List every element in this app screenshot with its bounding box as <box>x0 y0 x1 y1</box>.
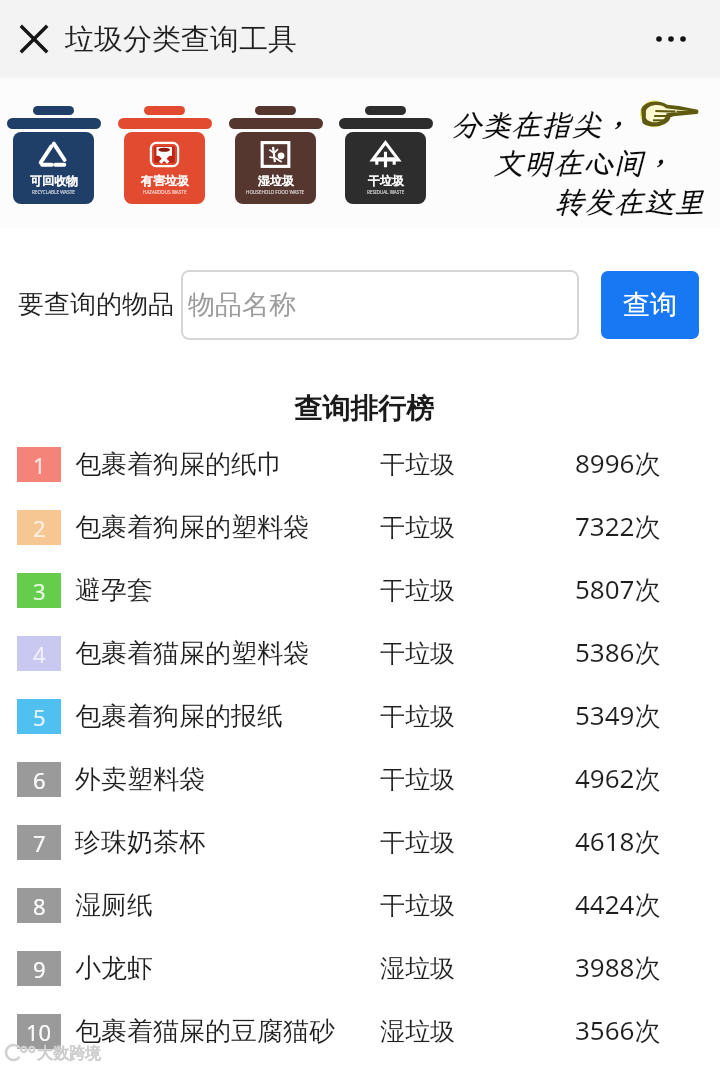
button[interactable]: 4 <box>0 622 720 685</box>
staticText: 包裹着猫屎的豆腐猫砂 <box>75 1015 335 1048</box>
staticText: 包裹着猫屎的塑料袋 <box>75 637 309 670</box>
button[interactable]: 5 <box>0 685 720 748</box>
staticText: 5807次 <box>575 571 661 607</box>
button[interactable]: 1 <box>0 433 720 496</box>
staticText: 干垃圾 <box>380 827 455 858</box>
button[interactable]: More options <box>645 13 697 65</box>
staticText: 外卖塑料袋 <box>75 763 205 796</box>
button[interactable]: 查询 <box>601 271 699 339</box>
staticText: HOUSEHOLD FOOD WASTE <box>246 189 305 195</box>
staticText: 包裹着狗屎的纸巾 <box>75 448 283 481</box>
staticText: 3988次 <box>575 949 661 985</box>
staticText: 6 <box>33 765 46 795</box>
staticText: 垃圾分类查询工具 <box>65 21 297 58</box>
staticText: 包裹着狗屎的塑料袋 <box>75 511 309 544</box>
staticText: 干垃圾 <box>380 701 455 732</box>
button[interactable]: 7 <box>0 811 720 874</box>
button[interactable]: 8 <box>0 874 720 937</box>
staticText: 文明在心间， <box>493 143 673 183</box>
staticText: 转发在这里 <box>554 182 704 222</box>
staticText: 3 <box>33 576 46 606</box>
staticText: 1 <box>33 450 46 480</box>
staticText: RECYCLABLE WASTE <box>32 189 75 195</box>
button[interactable]: Close <box>8 13 60 65</box>
staticText: 干垃圾 <box>380 575 455 606</box>
staticText: 珍珠奶茶杯 <box>75 826 205 859</box>
staticText: 7322次 <box>575 508 661 544</box>
staticText: 5386次 <box>575 634 661 670</box>
staticText: 4 <box>33 639 46 669</box>
staticText: 9 <box>33 954 46 984</box>
staticText: 干垃圾 <box>380 512 455 543</box>
staticText: 湿垃圾 <box>380 953 455 984</box>
button[interactable]: 6 <box>0 748 720 811</box>
staticText: 3566次 <box>575 1012 661 1048</box>
staticText: 干垃圾 <box>380 764 455 795</box>
button[interactable]: 3 <box>0 559 720 622</box>
staticText: 包裹着狗屎的报纸 <box>75 700 283 733</box>
staticText: 干垃圾 <box>380 638 455 669</box>
staticText: 10 <box>26 1017 52 1047</box>
staticText: 查询排行榜 <box>294 391 434 426</box>
staticText: 干垃圾 <box>380 890 455 921</box>
staticText: 5349次 <box>575 697 661 733</box>
staticText: 8996次 <box>575 445 661 481</box>
staticText: 小龙虾 <box>75 952 153 985</box>
staticText: RESIDUAL WASTE <box>367 189 405 195</box>
staticText: 有害垃圾 <box>141 173 189 188</box>
staticText: 干垃圾 <box>380 449 455 480</box>
button[interactable]: 物品名称 <box>181 270 579 340</box>
staticText: 大数跨境 <box>37 1044 101 1064</box>
staticText: HAZARDOUS WASTE <box>143 189 187 195</box>
staticText: 7 <box>33 828 46 858</box>
staticText: 8 <box>33 891 46 921</box>
button[interactable]: 9 <box>0 937 720 1000</box>
staticText: 湿厕纸 <box>75 889 153 922</box>
button[interactable]: 10 <box>0 1000 720 1063</box>
staticText: 2 <box>33 513 46 543</box>
staticText: 查询 <box>623 288 677 322</box>
staticText: 4962次 <box>575 760 661 796</box>
button[interactable]: 2 <box>0 496 720 559</box>
staticText: 物品名称 <box>188 288 296 322</box>
staticText: 湿垃圾 <box>380 1016 455 1047</box>
staticText: 避孕套 <box>75 574 153 607</box>
staticText: 要查询的物品 <box>18 288 174 321</box>
staticText: 4618次 <box>575 823 661 859</box>
staticText: 4424次 <box>575 886 661 922</box>
staticText: 干垃圾 <box>368 173 404 188</box>
staticText: 分类在指尖， <box>451 105 631 145</box>
staticText: 可回收物 <box>30 173 78 188</box>
staticText: 湿垃圾 <box>258 173 294 188</box>
staticText: 5 <box>33 702 46 732</box>
